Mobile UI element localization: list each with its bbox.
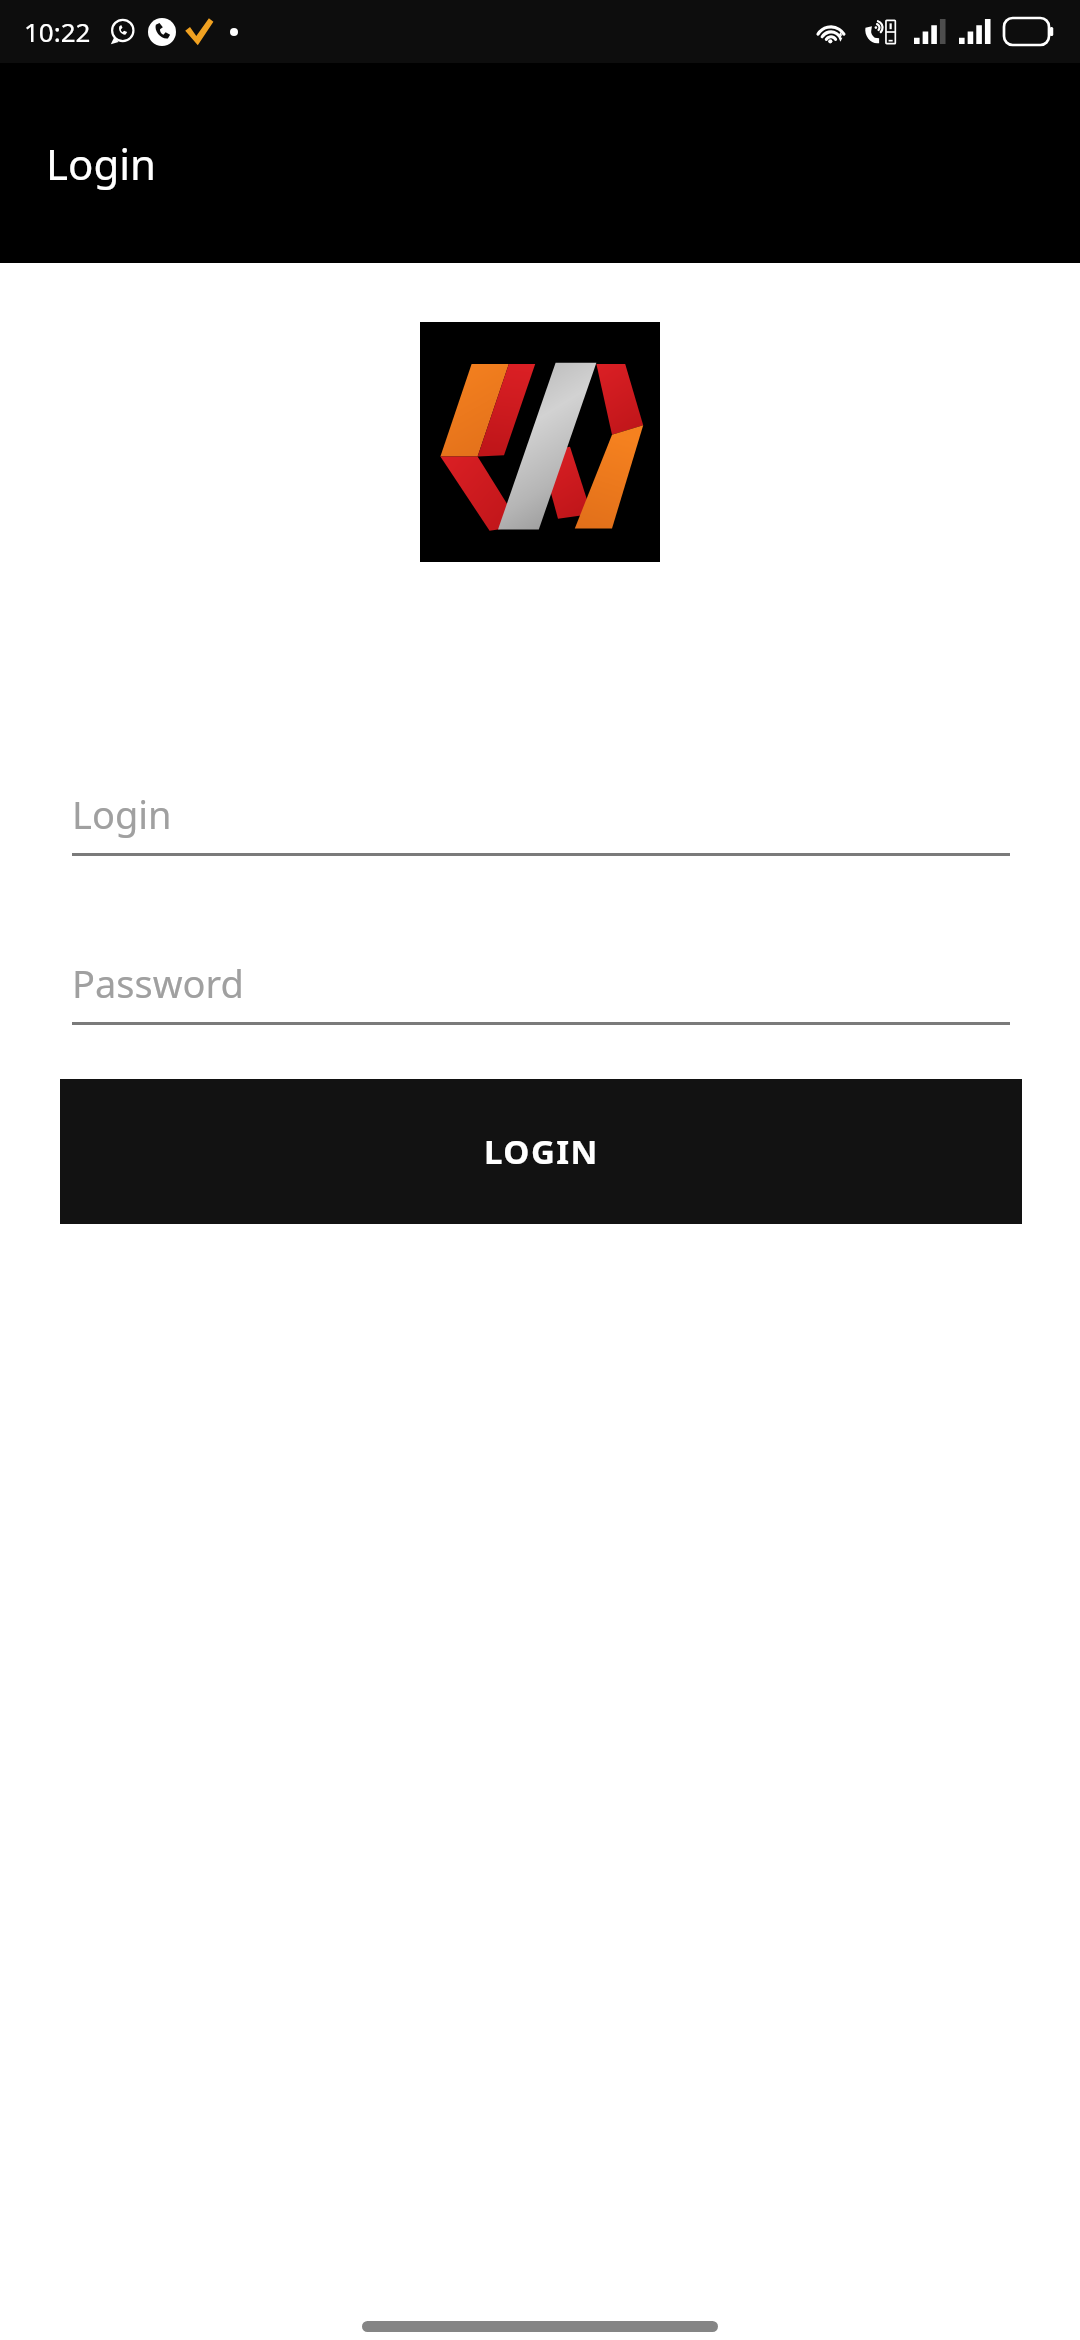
button[interactable]: LOGIN — [60, 1079, 1022, 1224]
staticText: Login — [72, 788, 172, 840]
button[interactable]: Password — [72, 944, 1010, 1025]
staticText: 10:22 — [24, 14, 91, 49]
staticText: Password — [72, 957, 244, 1009]
other: App logo — [420, 322, 660, 562]
button[interactable]: Login — [72, 775, 1010, 856]
staticText: Login — [46, 135, 157, 192]
staticText: LOGIN — [484, 1129, 599, 1174]
